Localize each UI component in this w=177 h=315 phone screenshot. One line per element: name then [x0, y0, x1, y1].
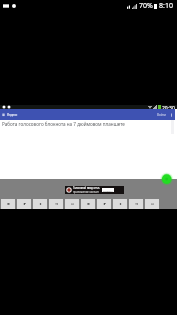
staticText: 8:10: [159, 1, 173, 11]
button[interactable]: Key 5: [65, 199, 79, 209]
button[interactable]: Menu: [2, 112, 5, 117]
button[interactable]: Key 4: [49, 199, 63, 209]
staticText: Голосовой ввод откл.: [73, 186, 100, 190]
button[interactable]: Key 7: [97, 199, 111, 209]
staticText: Работа голосового блокнота на 7 дюймовом…: [2, 121, 125, 127]
button[interactable]: Key 6: [81, 199, 95, 209]
button[interactable]: Key 3: [33, 199, 47, 209]
button[interactable]: Key 9: [129, 199, 143, 209]
button[interactable]: More options: [170, 112, 173, 118]
staticText: Войти: [157, 113, 166, 117]
staticText: приложение молчит: [73, 190, 99, 194]
button[interactable]: Key 8: [113, 199, 127, 209]
staticText: ОТМЕНА: [103, 189, 113, 192]
staticText: Яндекс: [7, 113, 18, 117]
button[interactable]: Голосовой ввод откл.: [65, 186, 124, 194]
button[interactable]: Key 1: [1, 199, 15, 209]
button[interactable]: Recording indicator: [160, 172, 173, 185]
button[interactable]: Key 2: [17, 199, 31, 209]
staticText: 20:30: [162, 105, 175, 109]
button[interactable]: ОТМЕНА: [102, 188, 114, 192]
staticText: 70%: [139, 1, 153, 11]
button[interactable]: Key 10: [145, 199, 159, 209]
